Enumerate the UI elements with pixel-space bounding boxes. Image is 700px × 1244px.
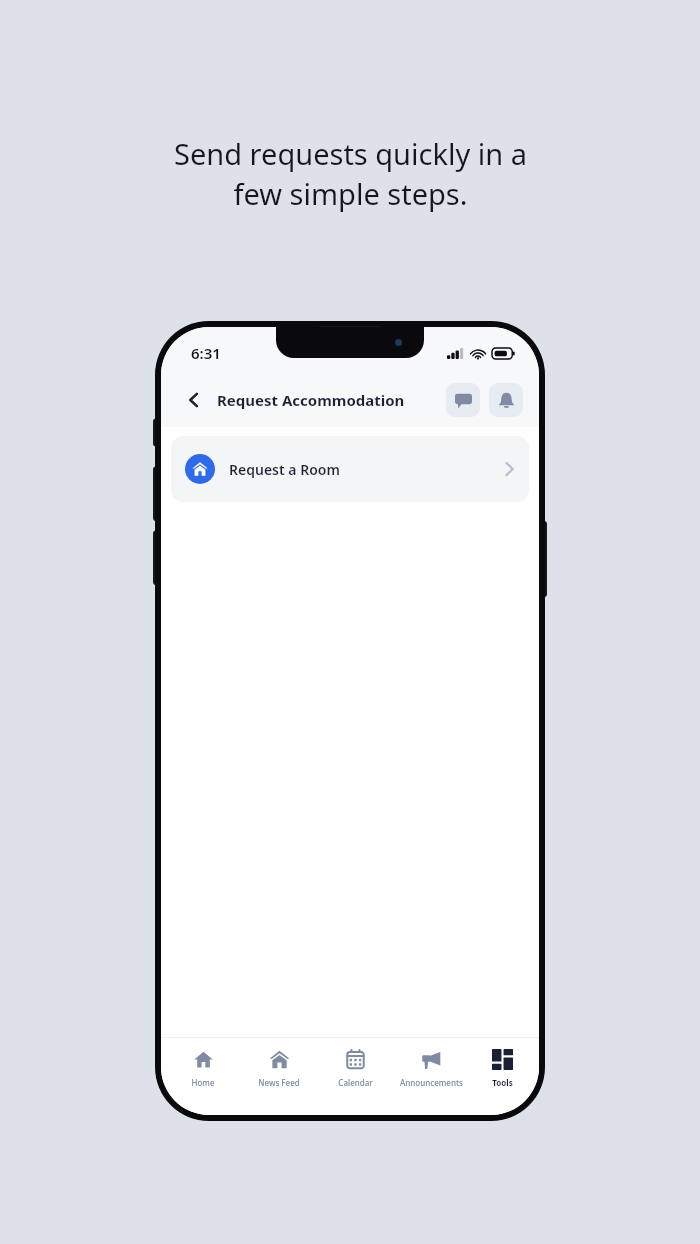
button[interactable]: News Feed [241,1045,317,1092]
button[interactable]: Messages [446,383,480,417]
button[interactable]: Calendar [317,1045,393,1092]
button[interactable]: Home [165,1045,241,1092]
button[interactable]: Tools [469,1045,535,1092]
staticText: 6:31 [191,343,221,363]
button[interactable]: Request a Room [171,436,529,502]
button[interactable]: Announcements [393,1045,469,1092]
staticText: News Feed [258,1077,300,1088]
button[interactable]: Notifications [489,383,523,417]
staticText: Announcements [400,1077,463,1088]
staticText: Request Accommodation [217,390,405,410]
button[interactable]: Back [177,383,211,417]
staticText: few simple steps. [233,174,468,213]
staticText: Tools [492,1077,513,1088]
staticText: Request a Room [229,460,340,479]
staticText: Calendar [338,1077,373,1088]
staticText: Send requests quickly in a [174,134,527,173]
staticText: Home [191,1077,215,1088]
